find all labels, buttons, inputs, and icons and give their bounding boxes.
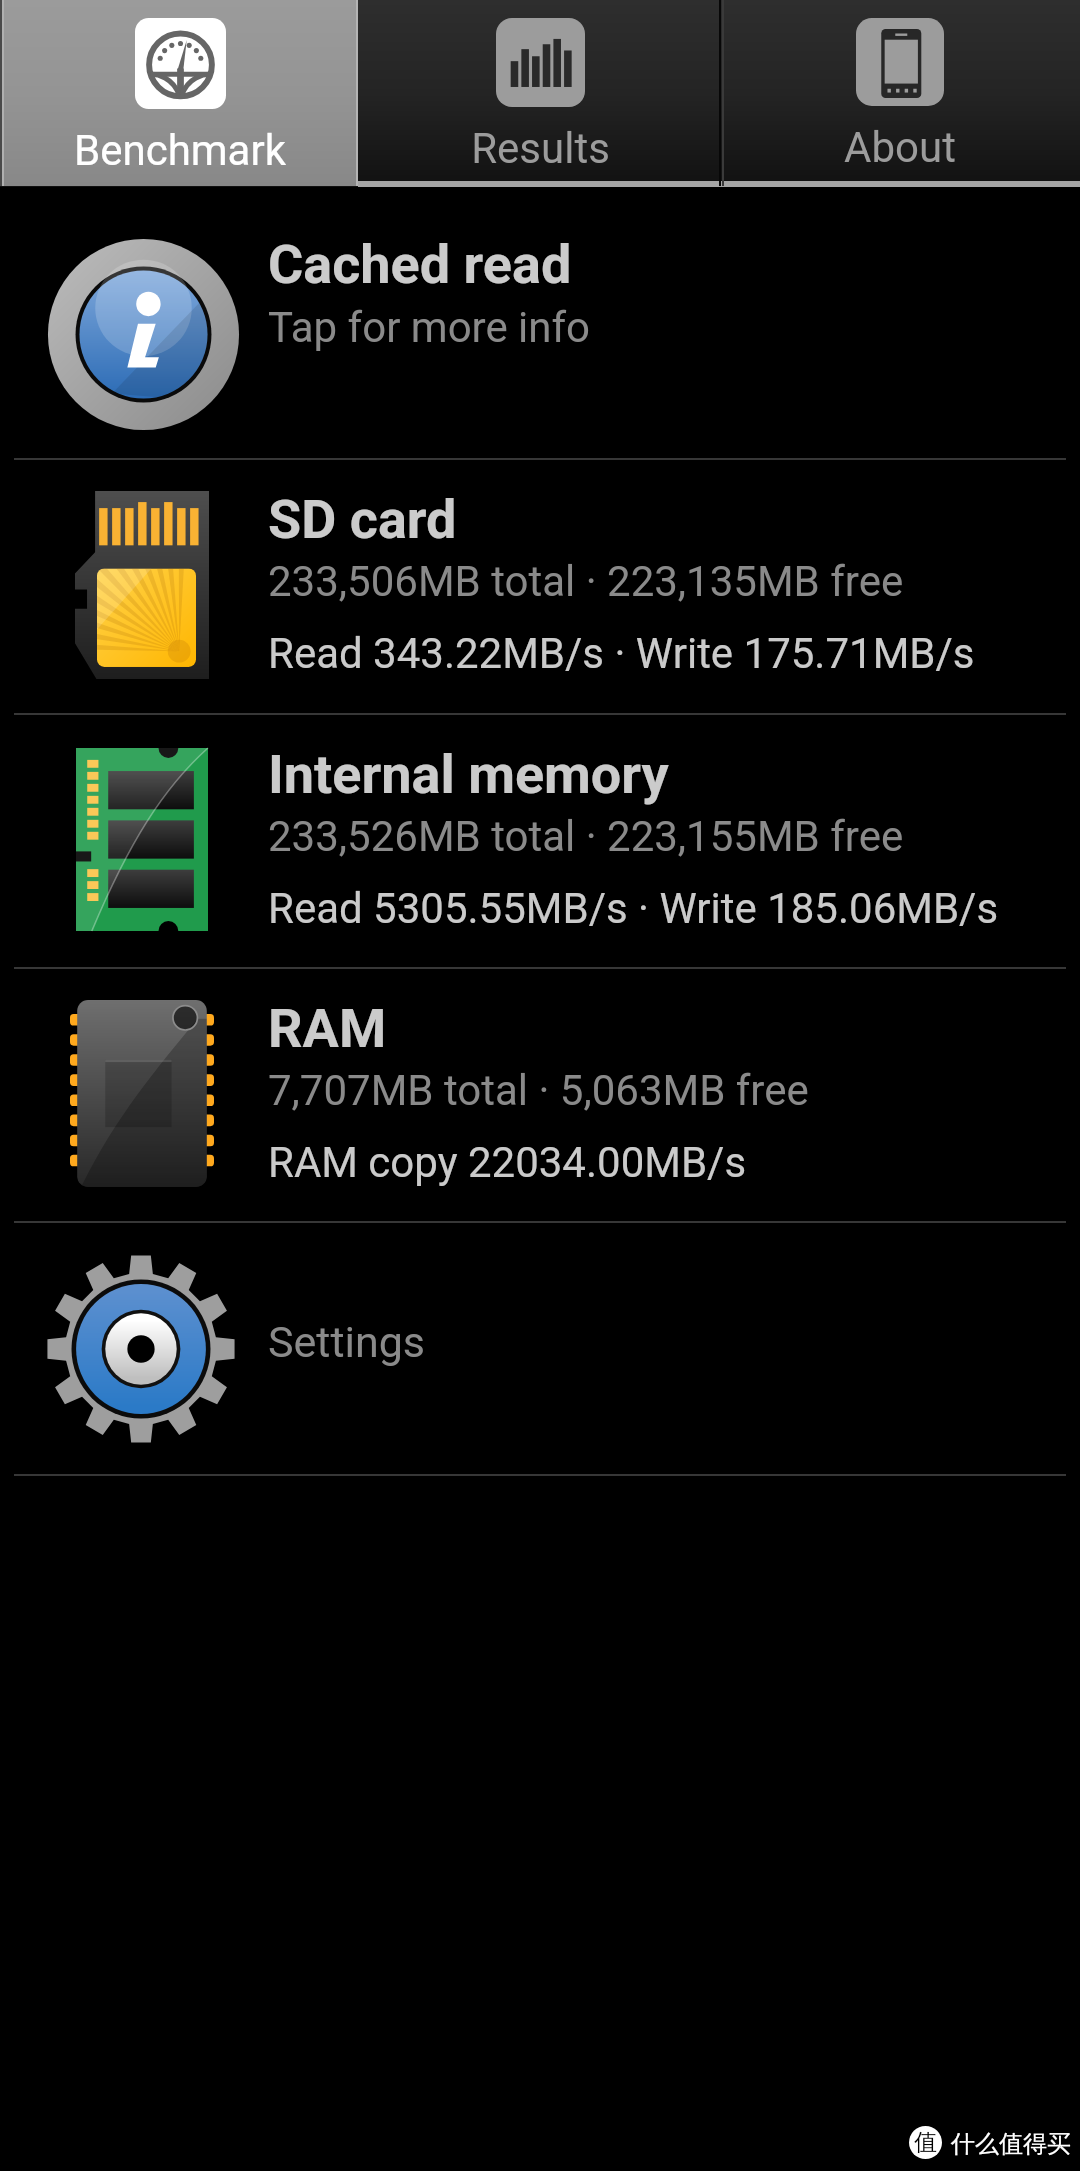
staticText: Benchmark — [74, 126, 286, 175]
staticText: 233,526MB total · 223,155MB free — [268, 812, 904, 861]
button[interactable]: Results — [360, 0, 720, 186]
staticText: RAM copy 22034.00MB/s — [268, 1138, 747, 1187]
staticText: Read 5305.55MB/s · Write 185.06MB/s — [268, 884, 999, 933]
staticText: Internal memory — [268, 743, 669, 806]
staticText: RAM — [268, 997, 387, 1060]
staticText: Results — [471, 124, 610, 173]
staticText: Read 343.22MB/s · Write 175.71MB/s — [268, 629, 975, 678]
staticText: Cached read — [268, 233, 572, 296]
button[interactable]: SD card — [0, 460, 1080, 713]
other: Info — [45, 236, 242, 433]
button[interactable]: Info — [0, 189, 1080, 458]
other: RAM — [70, 1000, 214, 1187]
other: Internal memory — [76, 748, 208, 931]
button[interactable]: About — [720, 0, 1080, 186]
staticText: 7,707MB total · 5,063MB free — [268, 1066, 809, 1115]
button[interactable]: Internal memory — [0, 715, 1080, 967]
button[interactable]: Benchmark — [0, 0, 360, 186]
other: SD card — [75, 491, 209, 679]
staticText: About — [844, 123, 956, 172]
staticText: 值 — [914, 2128, 937, 2157]
button[interactable]: Settings — [0, 1223, 1080, 1474]
staticText: 233,506MB total · 223,135MB free — [268, 557, 904, 606]
other: Settings — [45, 1253, 237, 1445]
staticText: SD card — [268, 488, 457, 551]
staticText: Tap for more info — [268, 303, 591, 352]
staticText: 什么值得买 — [951, 2129, 1071, 2159]
button[interactable] — [0, 0, 358, 186]
staticText: Settings — [268, 1317, 426, 1367]
button[interactable]: RAM — [0, 969, 1080, 1221]
